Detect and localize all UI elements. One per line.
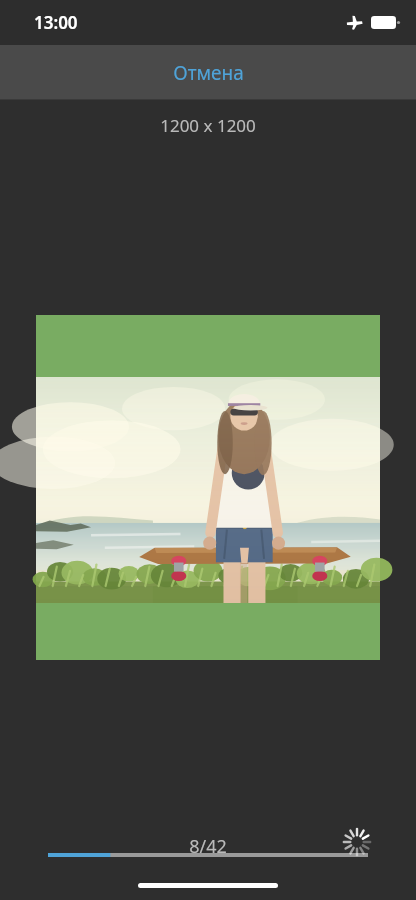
button[interactable]: Отмена [0,45,416,100]
staticText: 1200 x 1200 [0,114,416,137]
staticText: 13:00 [34,11,78,34]
other: Loading [343,828,371,856]
staticText: Отмена [173,60,244,86]
staticText: 8/42 [0,834,416,859]
